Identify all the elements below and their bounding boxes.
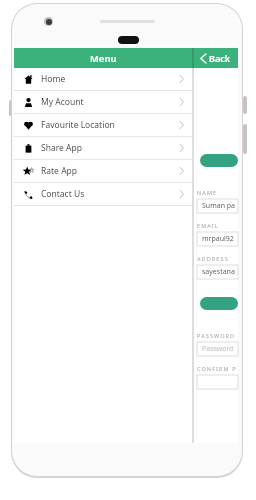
button[interactable]: Rate App: [14, 160, 192, 182]
staticText: Favourite Location: [41, 119, 115, 131]
button[interactable]: Back: [192, 48, 238, 68]
button[interactable]: Contact Us: [14, 183, 192, 205]
staticText: CONFIRM P: [197, 365, 237, 372]
staticText: Password: [202, 344, 234, 354]
button[interactable]: Share App: [14, 137, 192, 159]
staticText: Rate App: [41, 165, 78, 177]
staticText: Back: [209, 52, 231, 64]
staticText: Suman pa: [202, 201, 236, 211]
staticText: sayestana: [202, 267, 235, 277]
staticText: Menu: [90, 52, 117, 65]
button[interactable]: Home: [14, 68, 192, 90]
button[interactable]: Update profile: [200, 154, 238, 167]
staticText: Contact Us: [41, 188, 85, 200]
staticText: mrpaul92: [202, 234, 234, 244]
staticText: ADDRESS: [197, 255, 229, 262]
button[interactable]: Suman pa: [197, 199, 238, 213]
button[interactable]: Favourite Location: [14, 114, 192, 136]
button[interactable]: mrpaul92: [197, 232, 238, 246]
button[interactable]: [197, 375, 238, 389]
staticText: My Acount: [41, 96, 84, 108]
button[interactable]: Save: [200, 297, 238, 310]
staticText: Home: [41, 73, 66, 85]
staticText: PASSWORD: [197, 332, 236, 339]
staticText: EMAIL: [197, 222, 219, 229]
button[interactable]: Password: [197, 342, 238, 356]
staticText: NAME: [197, 189, 218, 196]
button[interactable]: sayestana: [197, 265, 238, 279]
staticText: Share App: [41, 142, 82, 154]
button[interactable]: My Acount: [14, 91, 192, 113]
